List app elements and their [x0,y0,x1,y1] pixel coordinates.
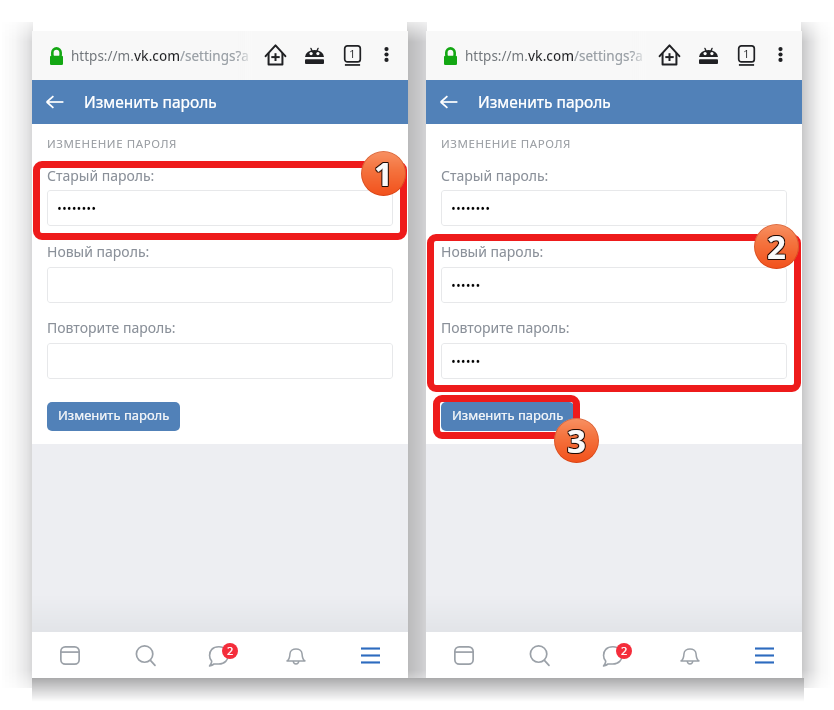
staticText: 2 [767,225,786,269]
staticText: 3 [568,418,587,462]
button[interactable]: Messages [577,632,652,678]
staticText: 1 [374,151,393,196]
staticText: /settings?a [180,47,249,65]
staticText: 3 [566,419,585,463]
staticText: 2 [621,643,628,658]
staticText: 3 [567,418,586,462]
staticText: vk.com [134,47,180,65]
staticText: •••••• [451,276,481,294]
staticText: 1 [373,151,392,195]
staticText: 1 [373,151,392,196]
staticText: vk.com [528,47,574,65]
staticText: 2 [766,224,785,269]
button[interactable]: Back [45,92,65,112]
staticText: 2 [768,224,787,268]
button[interactable]: •••••••• [47,190,393,226]
button[interactable]: Android app [305,48,324,64]
staticText: 1 [375,151,394,195]
staticText: 1 [374,151,393,195]
button[interactable]: Search [502,632,577,678]
button[interactable]: News [32,632,108,678]
button[interactable]: Back [439,92,459,112]
staticText: Изменить пароль [58,406,170,424]
button[interactable]: More options [778,47,783,62]
staticText: 2 [227,643,234,658]
staticText: 2 [766,225,785,269]
staticText: 3 [568,419,587,463]
staticText: •••••• [451,352,481,370]
staticText: 3 [567,418,586,463]
staticText: •••••••• [451,199,491,217]
staticText: 2 [766,224,785,268]
staticText: https://m. [71,47,134,65]
staticText: Новый пароль: [441,242,544,261]
staticText: 3 [566,418,585,462]
button[interactable]: Notifications [258,632,333,678]
button[interactable] [47,343,393,379]
staticText: https://m. [465,47,528,65]
button[interactable]: Search [108,632,183,678]
staticText: 3 [567,419,586,463]
button[interactable]: •••••••• [441,190,787,226]
staticText: ИЗМЕНЕНИЕ ПАРОЛЯ [47,136,178,152]
staticText: 3 [568,418,587,463]
button[interactable]: Android app [699,48,718,64]
button[interactable]: Add to home screen [265,45,286,65]
staticText: Изменить пароль [452,406,564,424]
button[interactable]: Tabs [737,45,756,66]
staticText: 1 [374,152,393,196]
button[interactable]: •••••• [441,343,787,379]
staticText: Новый пароль: [47,242,150,261]
button[interactable]: Notifications [652,632,727,678]
staticText: Повторите пароль: [441,318,570,337]
button[interactable]: •••••• [441,267,787,303]
staticText: 1 [743,46,750,62]
button[interactable] [47,267,393,303]
staticText: Старый пароль: [47,166,155,185]
staticText: Изменить пароль [478,91,611,112]
button[interactable]: Изменить пароль [441,402,574,431]
button[interactable]: Изменить пароль [47,402,180,431]
staticText: •••••••• [57,199,97,217]
button[interactable]: Menu [333,632,408,678]
staticText: Старый пароль: [441,166,549,185]
staticText: 2 [768,224,787,269]
button[interactable]: Messages [183,632,258,678]
staticText: /settings?a [574,47,643,65]
button[interactable]: Tabs [343,45,362,66]
staticText: Повторите пароль: [47,318,176,337]
staticText: ИЗМЕНЕНИЕ ПАРОЛЯ [441,136,572,152]
staticText: 1 [375,151,394,196]
staticText: 1 [375,152,394,196]
staticText: 1 [349,46,356,62]
button[interactable]: News [426,632,502,678]
staticText: 1 [373,152,392,196]
staticText: Изменить пароль [84,91,217,112]
button[interactable]: Menu [727,632,802,678]
button[interactable]: Add to home screen [659,45,680,65]
button[interactable]: More options [384,47,389,62]
staticText: 2 [767,224,786,269]
staticText: 2 [768,225,787,269]
staticText: 3 [566,418,585,463]
staticText: 2 [767,224,786,268]
